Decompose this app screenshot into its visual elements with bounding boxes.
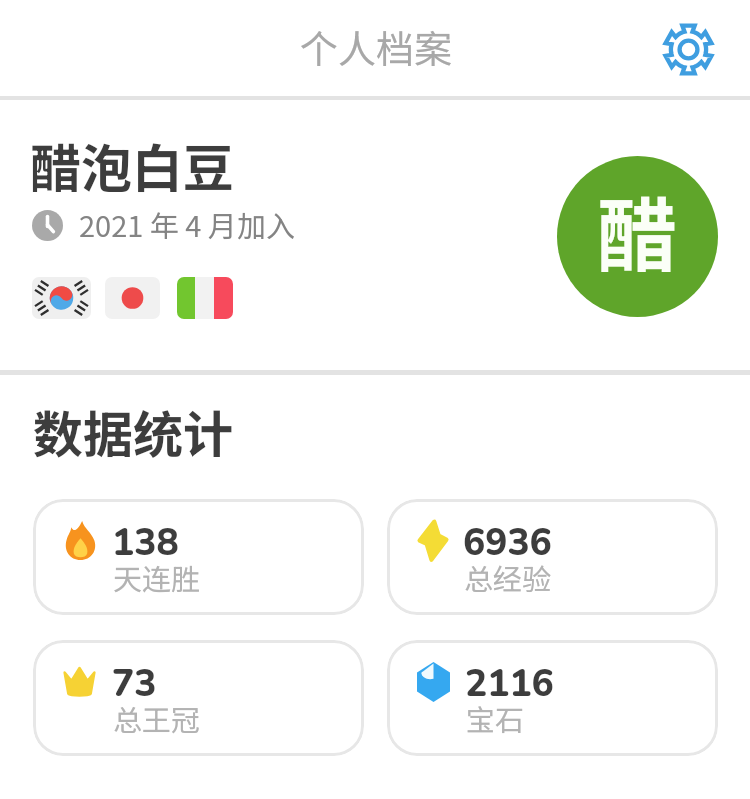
staticText: 138 xyxy=(112,518,179,568)
staticText: 6936 xyxy=(463,518,552,568)
staticText: 总王冠 xyxy=(113,697,201,739)
staticText: 总经验 xyxy=(464,556,552,598)
button[interactable]: 6936 xyxy=(387,499,718,615)
button[interactable]: 138 xyxy=(33,499,364,615)
button[interactable]: 2116 xyxy=(387,640,718,756)
button[interactable]: Profile avatar xyxy=(557,156,718,317)
button[interactable]: 73 xyxy=(33,640,364,756)
staticText: 2116 xyxy=(465,659,554,709)
staticText: 宝石 xyxy=(466,697,525,739)
button[interactable]: Profile title bar xyxy=(0,0,750,96)
staticText: 2021 年 4 月加入 xyxy=(79,203,295,245)
button[interactable]: Settings xyxy=(656,17,720,81)
staticText: 醋泡白豆 xyxy=(30,128,235,202)
staticText: 个人档案 xyxy=(300,19,453,74)
staticText: 天连胜 xyxy=(113,556,201,598)
staticText: 数据统计 xyxy=(33,395,233,467)
staticText: 醋 xyxy=(597,172,677,288)
staticText: 73 xyxy=(112,659,157,709)
